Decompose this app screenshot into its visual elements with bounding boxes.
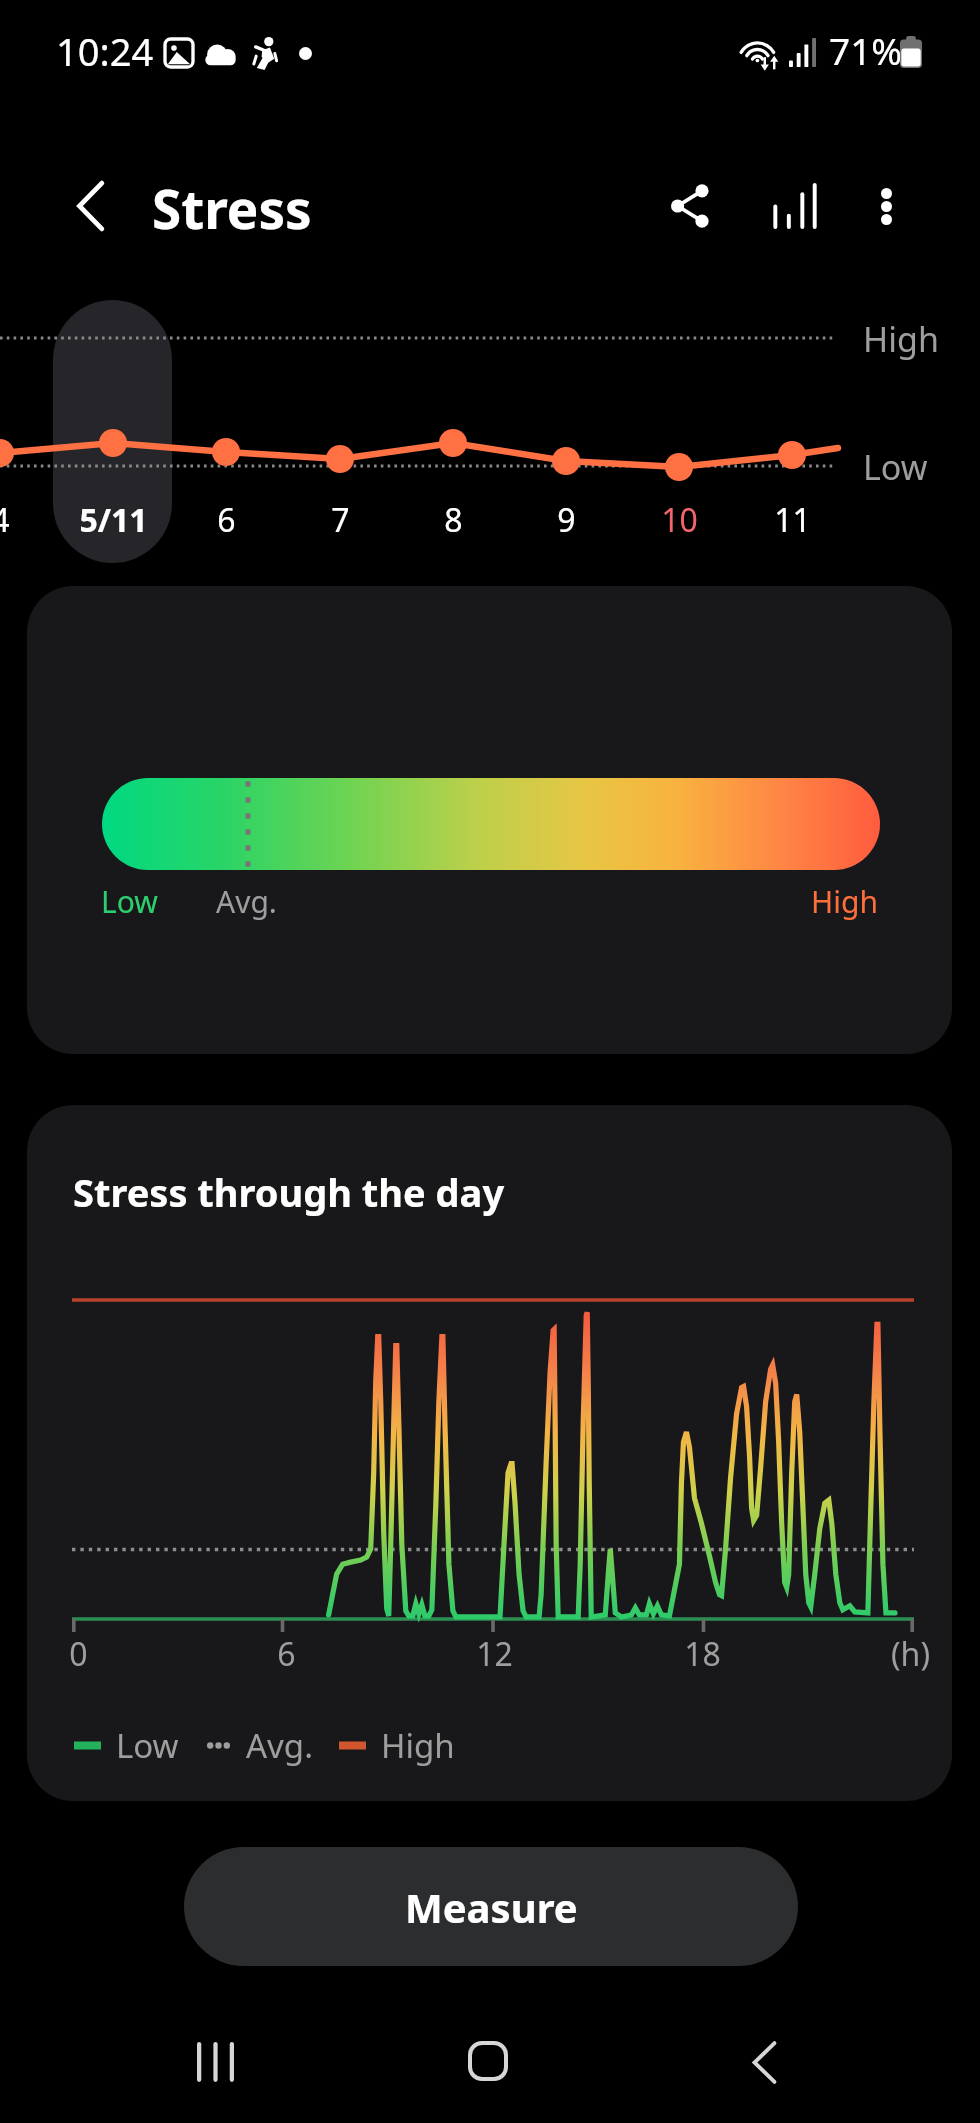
button[interactable]: Back [716,2014,812,2110]
staticText: 6 [217,498,236,542]
staticText: 0 [69,1632,88,1676]
button[interactable]: Recent apps [167,2014,263,2110]
button[interactable]: Low [27,586,952,1054]
staticText: High [381,1723,455,1768]
staticText: Low [101,881,158,922]
button[interactable]: Navigate up [43,158,139,254]
button[interactable]: Trends chart [746,158,842,254]
button[interactable]: Measure [184,1847,798,1966]
staticText: 10:24 [56,25,154,77]
staticText: 4 [0,498,10,542]
staticText: High [863,316,939,362]
staticText: 18 [684,1632,721,1676]
staticText: High [811,881,878,922]
staticText: 10 [661,498,698,542]
staticText: Stress [152,172,312,244]
staticText: 12 [476,1632,513,1676]
staticText: Measure [405,1880,578,1934]
staticText: 7 [331,498,350,542]
staticText: Avg. [246,1723,313,1768]
staticText: 71% [829,25,903,75]
staticText: (h) [891,1632,930,1676]
staticText: Avg. [216,881,277,922]
button[interactable]: Share [642,158,738,254]
staticText: 5/11 [79,498,148,542]
staticText: 9 [557,498,576,542]
staticText: 11 [774,498,811,542]
staticText: 8 [444,498,463,542]
staticText: Low [116,1723,179,1768]
staticText: Low [863,444,928,490]
staticText: Stress through the day [73,1166,505,1218]
button[interactable]: More options [838,158,934,254]
button[interactable] [53,300,172,563]
button[interactable]: Home [440,2013,536,2109]
staticText: 6 [277,1632,296,1676]
button[interactable]: Stress through the day [27,1105,952,1801]
